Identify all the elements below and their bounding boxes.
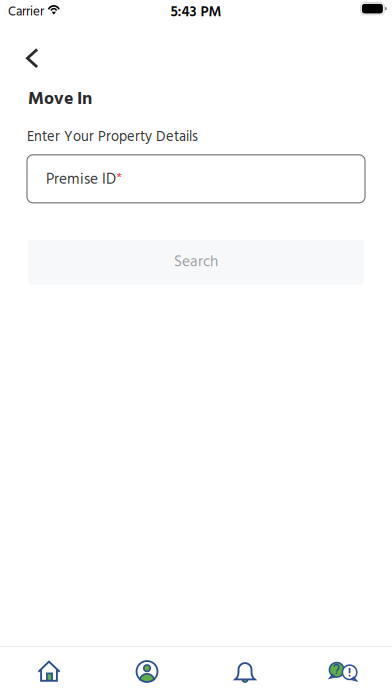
button[interactable]: Help (294, 649, 392, 693)
button[interactable]: Notifications (196, 649, 294, 693)
button[interactable]: Account (98, 649, 196, 693)
button[interactable]: Home (0, 649, 98, 693)
staticText: * (116, 168, 121, 189)
staticText: Carrier (8, 2, 44, 23)
button[interactable]: Back (0, 22, 52, 78)
staticText: Search (174, 250, 218, 275)
button[interactable]: Search (0, 240, 392, 285)
staticText: Premise ID (46, 168, 116, 192)
staticText: Enter Your Property Details (27, 126, 198, 149)
staticText: Move In (28, 85, 92, 114)
staticText: 5:43 PM (170, 1, 221, 24)
